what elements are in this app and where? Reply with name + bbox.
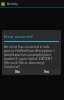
staticText: Activity bbox=[7, 2, 18, 6]
button[interactable]: No bbox=[3, 69, 31, 74]
staticText: No bbox=[15, 70, 20, 74]
staticText: An error has occurred in sub java.io.Fil… bbox=[4, 44, 56, 69]
button[interactable]: Yes bbox=[32, 69, 60, 74]
other: App icon bbox=[1, 2, 5, 6]
staticText: Yes bbox=[44, 70, 49, 74]
staticText: Error occurred bbox=[4, 34, 33, 40]
